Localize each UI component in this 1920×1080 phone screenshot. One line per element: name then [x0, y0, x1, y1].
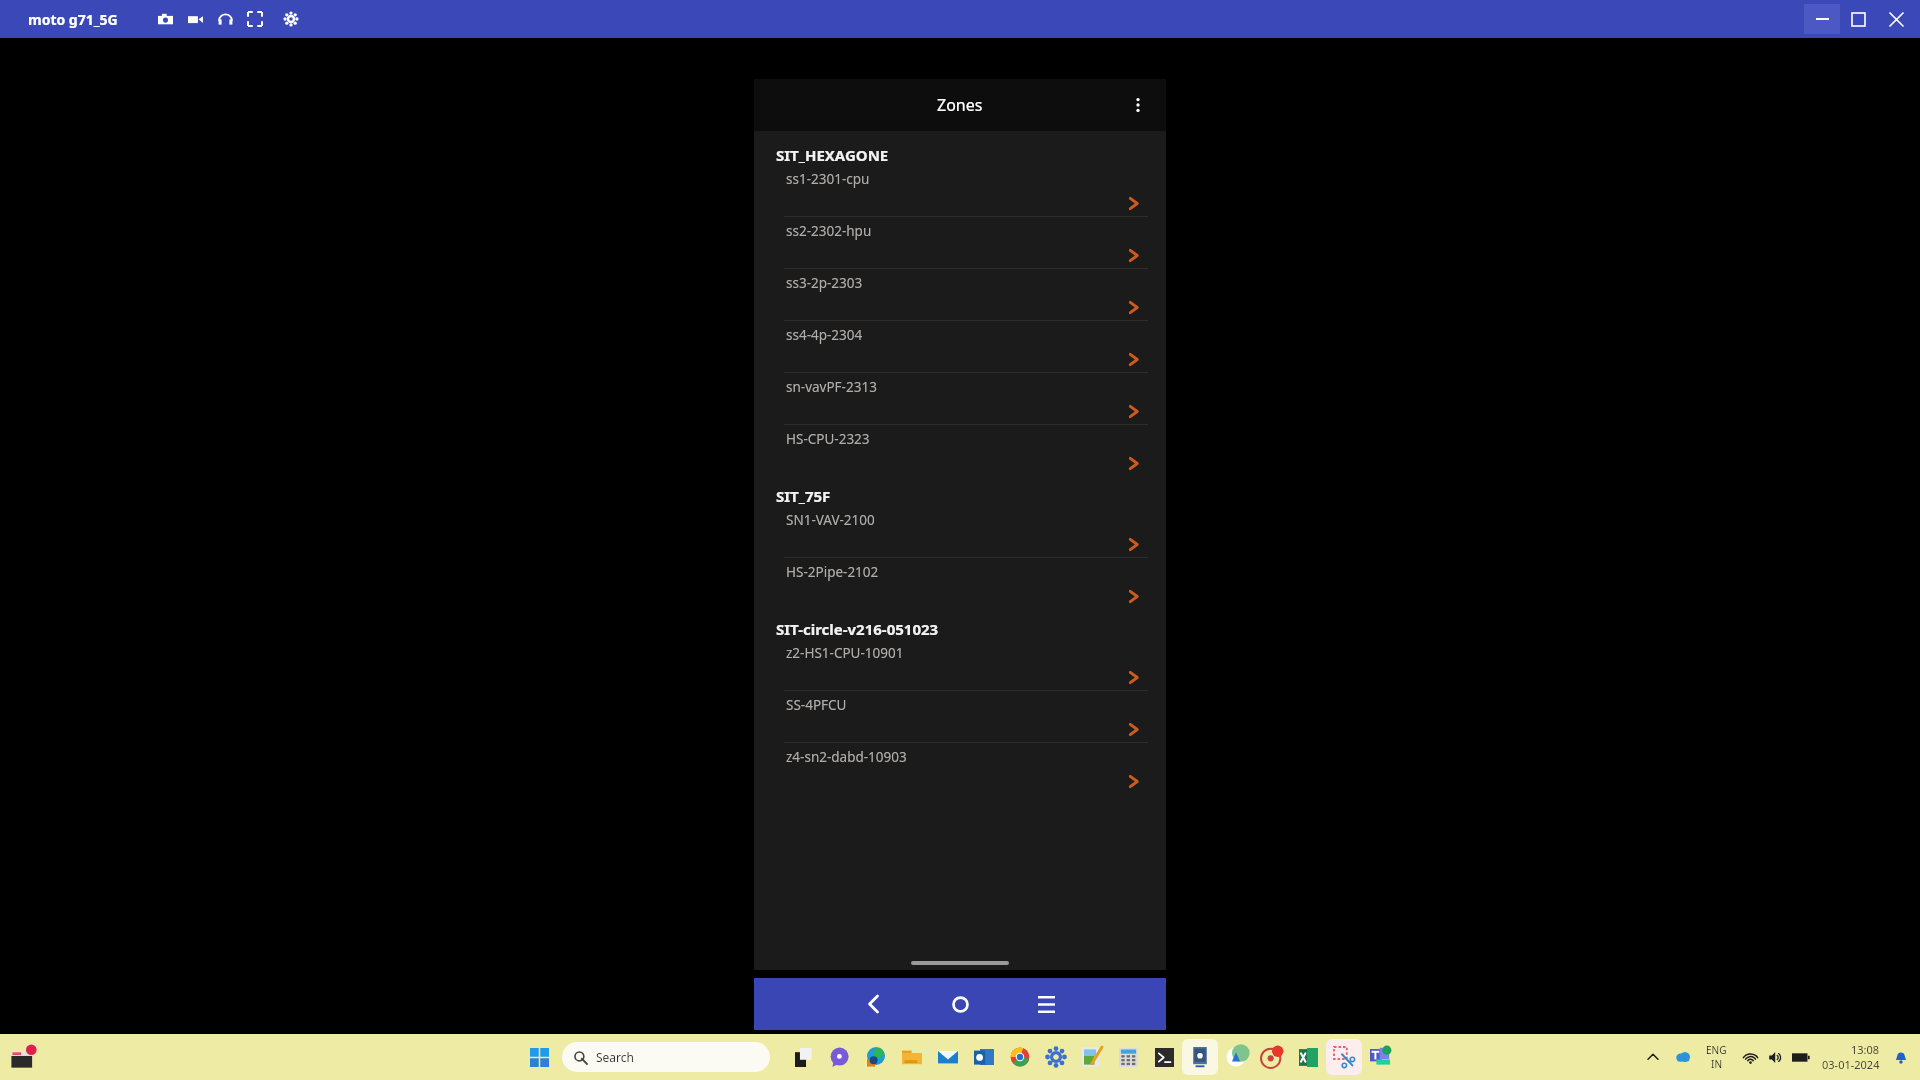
button[interactable]: Maximize [1840, 4, 1876, 34]
button[interactable]: Teams chat [822, 1039, 858, 1075]
button[interactable]: Home [932, 978, 988, 1030]
button[interactable]: ss1-2301-cpu [754, 165, 1166, 216]
button[interactable]: Settings [280, 8, 302, 30]
staticText: SIT_HEXAGONE [776, 145, 889, 165]
button[interactable]: z4-sn2-dabd-10903 [754, 743, 1166, 794]
staticText: 13:08 [1851, 1042, 1880, 1057]
button[interactable]: Recording [1254, 1039, 1290, 1075]
button[interactable]: ss4-4p-2304 [754, 321, 1166, 372]
button[interactable]: Close [1876, 4, 1916, 34]
button[interactable]: Excel [1290, 1039, 1326, 1075]
button[interactable]: Task view [786, 1039, 822, 1075]
button[interactable]: SS-4PFCU [754, 691, 1166, 742]
staticText: SS-4PFCU [786, 696, 847, 714]
button[interactable]: Mail [930, 1039, 966, 1075]
button[interactable]: Back [846, 978, 902, 1030]
button[interactable]: ss3-2p-2303 [754, 269, 1166, 320]
staticText: IN [1711, 1057, 1722, 1071]
staticText: SIT-circle-v216-051023 [776, 619, 939, 639]
button[interactable]: Audio [214, 8, 236, 30]
button[interactable]: SN1-VAV-2100 [754, 506, 1166, 557]
button[interactable]: Settings [1038, 1039, 1074, 1075]
staticText: Search [596, 1049, 634, 1065]
button[interactable]: HS-CPU-2323 [754, 425, 1166, 476]
button[interactable]: App store [1218, 1039, 1254, 1075]
button[interactable]: Terminal [1146, 1039, 1182, 1075]
staticText: SIT_75F [776, 486, 831, 506]
button[interactable]: Widgets [10, 1043, 38, 1071]
button[interactable]: Microsoft Teams [1362, 1039, 1398, 1075]
button[interactable]: Google Chrome [1002, 1039, 1038, 1075]
button[interactable]: ss2-2302-hpu [754, 217, 1166, 268]
staticText: Zones [937, 94, 983, 116]
button[interactable]: Start [522, 1040, 556, 1074]
button[interactable]: Screenshot [154, 8, 176, 30]
staticText: ss1-2301-cpu [786, 170, 870, 188]
button[interactable]: Record [184, 8, 206, 30]
button[interactable]: Notifications [1890, 1046, 1912, 1068]
button[interactable]: Calculator [1110, 1039, 1146, 1075]
button[interactable]: z2-HS1-CPU-10901 [754, 639, 1166, 690]
staticText: HS-2Pipe-2102 [786, 563, 879, 581]
button[interactable]: Network, sound, battery [1741, 1047, 1811, 1067]
staticText: moto g71_5G [28, 10, 118, 29]
staticText: SN1-VAV-2100 [786, 511, 875, 529]
button[interactable]: More options [1120, 87, 1156, 123]
button[interactable]: Show hidden icons [1642, 1046, 1664, 1068]
button[interactable]: Fullscreen [244, 8, 266, 30]
button[interactable]: Recent apps [1018, 978, 1074, 1030]
staticText: ss4-4p-2304 [786, 326, 863, 344]
button[interactable]: Paint [1074, 1039, 1110, 1075]
staticText: z4-sn2-dabd-10903 [786, 748, 907, 766]
button[interactable]: Minimize [1804, 4, 1840, 34]
staticText: HS-CPU-2323 [786, 430, 870, 448]
button[interactable]: Microsoft Edge [858, 1039, 894, 1075]
button[interactable]: File Explorer [894, 1039, 930, 1075]
staticText: ENG [1706, 1043, 1727, 1057]
button[interactable]: OneDrive [1672, 1046, 1694, 1068]
staticText: z2-HS1-CPU-10901 [786, 644, 904, 662]
button[interactable]: sn-vavPF-2313 [754, 373, 1166, 424]
staticText: 03-01-2024 [1822, 1057, 1880, 1072]
button[interactable]: HS-2Pipe-2102 [754, 558, 1166, 609]
staticText: sn-vavPF-2313 [786, 378, 877, 396]
button[interactable]: Search [562, 1042, 770, 1072]
staticText: ss3-2p-2303 [786, 274, 863, 292]
button[interactable]: Snipping Tool [1326, 1039, 1362, 1075]
button[interactable]: scrcpy [1182, 1039, 1218, 1075]
button[interactable]: 13:08 [1820, 1042, 1882, 1072]
button[interactable]: ENG [1702, 1043, 1731, 1071]
staticText: ss2-2302-hpu [786, 222, 872, 240]
button[interactable]: Outlook [966, 1039, 1002, 1075]
